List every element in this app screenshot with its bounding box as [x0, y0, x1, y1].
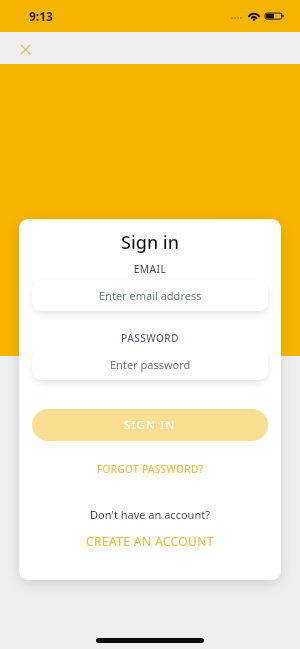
- staticText: FORGOT PASSWORD?: [97, 462, 204, 476]
- staticText: Sign in: [19, 230, 281, 255]
- staticText: Don't have an account?: [19, 507, 281, 522]
- staticText: Enter password: [110, 357, 191, 372]
- staticText: EMAIL: [19, 262, 281, 276]
- staticText: CREATE AN ACCOUNT: [86, 533, 214, 549]
- button[interactable]: Enter password: [32, 349, 268, 380]
- staticText: PASSWORD: [19, 331, 281, 345]
- button[interactable]: CREATE AN ACCOUNT: [19, 530, 281, 552]
- button[interactable]: Enter email address: [32, 280, 268, 311]
- button[interactable]: Close: [12, 32, 39, 64]
- button[interactable]: SIGN IN: [32, 409, 268, 441]
- staticText: 9:13: [29, 8, 53, 24]
- button[interactable]: FORGOT PASSWORD?: [19, 459, 281, 479]
- staticText: SIGN IN: [124, 417, 176, 433]
- staticText: Enter email address: [99, 288, 202, 303]
